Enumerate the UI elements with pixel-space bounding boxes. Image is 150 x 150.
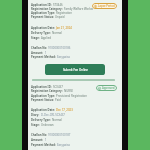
staticText: Paid — [55, 98, 61, 102]
staticText: Application Type: — [31, 94, 55, 98]
staticText: Diary: — [31, 113, 40, 117]
staticText: 5CX437 — [53, 85, 63, 89]
staticText: Easypaisa — [57, 55, 70, 59]
staticText: Lapse Period — [98, 4, 115, 8]
staticText: Application Date: — [31, 26, 55, 30]
staticText: Payment Status: — [31, 98, 54, 102]
staticText: Stage: — [31, 36, 40, 40]
button[interactable]: Lapse Period — [92, 3, 117, 9]
staticText: Provisional Registration — [56, 94, 87, 98]
staticText: Applied — [41, 36, 51, 40]
staticText: Registration Category: — [31, 89, 63, 93]
staticText: Unknown — [41, 123, 54, 127]
staticText: Challan No: — [31, 46, 47, 50]
staticText: Easypaisa — [57, 143, 70, 147]
staticText: 1 — [45, 138, 47, 142]
staticText: Approved — [102, 86, 115, 90]
staticText: Unpaid — [55, 15, 65, 19]
staticText: 91000000100187 — [48, 133, 71, 137]
staticText: Family Welfare Worker — [64, 7, 94, 11]
staticText: Payment Method: — [31, 55, 56, 59]
staticText: Application Date: — [31, 108, 55, 112]
staticText: Registration Category: — [31, 7, 63, 11]
staticText: Normal — [52, 118, 62, 122]
staticText: Dec 17, 2023 — [56, 108, 73, 112]
button[interactable]: Submit Fee Online — [45, 64, 105, 75]
staticText: 91000000100186 — [48, 46, 71, 50]
staticText: 5TX446 — [53, 3, 63, 7]
staticText: Challan No: — [31, 133, 47, 137]
staticText: Payment Status: — [31, 15, 54, 19]
staticText: Submit Fee Online — [63, 68, 88, 72]
staticText: Stage: — [31, 123, 40, 127]
staticText: Application ID: — [31, 85, 52, 89]
staticText: Payment Method: — [31, 143, 56, 147]
button[interactable]: Approved — [96, 85, 117, 91]
staticText: Normal — [52, 31, 62, 35]
staticText: 1 — [45, 51, 47, 55]
staticText: Delivery Type: — [31, 118, 51, 122]
staticText: Application ID: — [31, 3, 52, 7]
staticText: Application Type: — [31, 11, 55, 15]
staticText: Amount: — [31, 138, 44, 142]
staticText: Delivery Type: — [31, 31, 51, 35]
staticText: Jan 21, 2024 — [56, 26, 72, 30]
staticText: Amount: — [31, 51, 44, 55]
staticText: NURSE — [64, 89, 74, 93]
staticText: D-Dec-CRI-5CX437 — [41, 113, 65, 117]
staticText: Registration — [56, 11, 72, 15]
